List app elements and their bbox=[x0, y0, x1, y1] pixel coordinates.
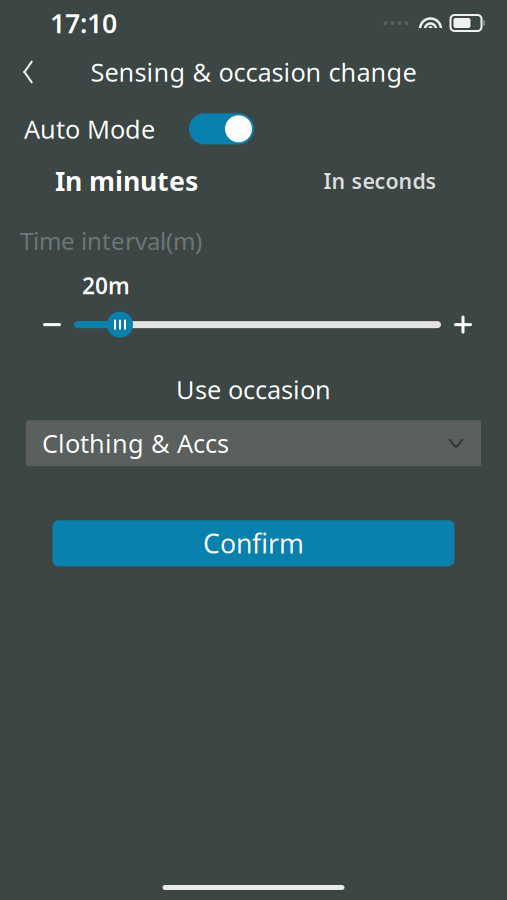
button[interactable]: Back bbox=[6, 50, 50, 94]
staticText: Sensing & occasion change bbox=[90, 55, 416, 89]
button[interactable]: Increase interval bbox=[441, 303, 485, 347]
staticText: Auto Mode bbox=[24, 112, 155, 146]
button[interactable]: Clothing & Accs bbox=[26, 420, 481, 466]
staticText: Use occasion bbox=[176, 373, 331, 406]
staticText: Clothing & Accs bbox=[42, 426, 229, 460]
button[interactable]: Decrease interval bbox=[30, 303, 74, 347]
staticText: Time interval(m) bbox=[20, 225, 202, 256]
button[interactable]: Confirm bbox=[52, 520, 454, 566]
button[interactable]: In seconds bbox=[253, 159, 507, 203]
staticText: 20m bbox=[82, 270, 130, 301]
staticText: In minutes bbox=[55, 163, 198, 198]
staticText: Confirm bbox=[203, 526, 304, 561]
button[interactable]: Auto Mode toggle, on bbox=[189, 113, 254, 144]
staticText: 17:10 bbox=[50, 5, 117, 41]
staticText: In seconds bbox=[323, 166, 436, 195]
button[interactable]: In minutes bbox=[0, 159, 253, 203]
